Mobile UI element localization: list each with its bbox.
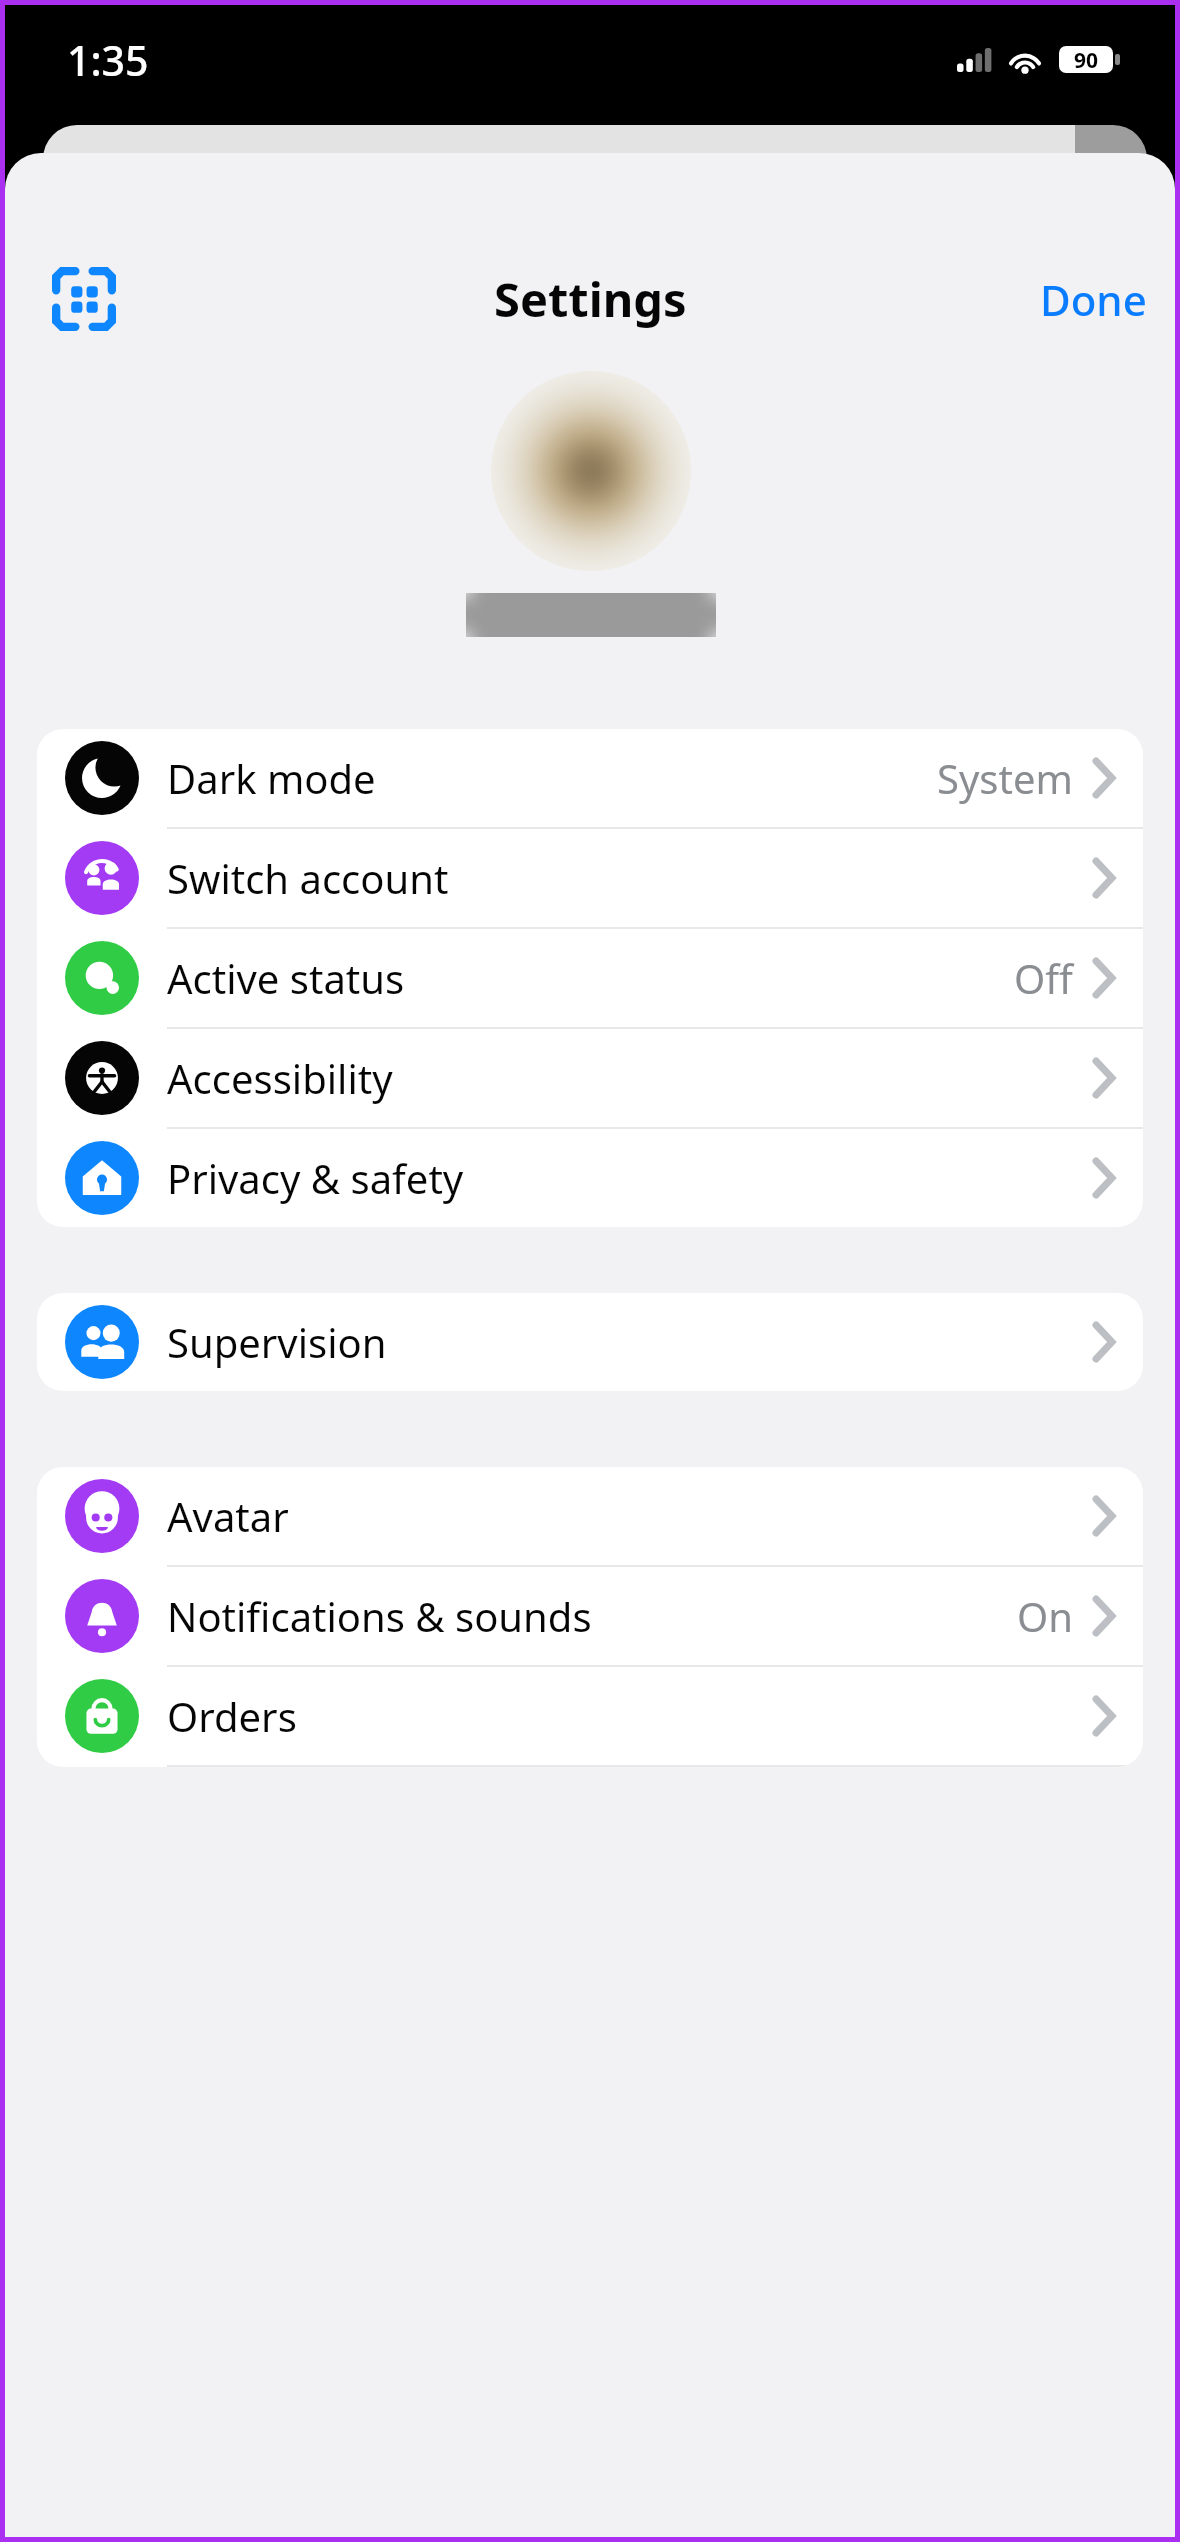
staticText: System — [937, 751, 1073, 805]
staticText: Avatar — [167, 1489, 289, 1543]
button[interactable]: Dark mode — [37, 729, 1143, 827]
staticText: Switch account — [167, 851, 449, 905]
button[interactable]: Active status — [37, 929, 1143, 1027]
button[interactable]: QR code — [45, 260, 123, 338]
staticText: On — [1017, 1589, 1073, 1643]
button[interactable]: Orders — [37, 1667, 1143, 1765]
staticText: Privacy & safety — [167, 1151, 464, 1205]
staticText: Supervision — [167, 1315, 387, 1369]
staticText: Off — [1014, 951, 1073, 1005]
button[interactable]: Supervision — [37, 1293, 1143, 1391]
staticText: 1:35 — [67, 32, 149, 88]
button[interactable]: Accessibility — [37, 1029, 1143, 1127]
button[interactable]: Notifications & sounds — [37, 1567, 1143, 1665]
button[interactable]: Done — [1040, 271, 1147, 328]
staticText: Settings — [494, 267, 687, 331]
staticText: Done — [1040, 271, 1147, 328]
staticText: Notifications & sounds — [167, 1589, 592, 1643]
staticText: Dark mode — [167, 751, 376, 805]
staticText: Orders — [167, 1689, 297, 1743]
staticText: Accessibility — [167, 1051, 393, 1105]
staticText: Active status — [167, 951, 405, 1005]
staticText: 90 — [1074, 46, 1099, 73]
button[interactable]: Avatar — [37, 1467, 1143, 1565]
button[interactable]: Privacy & safety — [37, 1129, 1143, 1227]
button[interactable]: Switch account — [37, 829, 1143, 927]
